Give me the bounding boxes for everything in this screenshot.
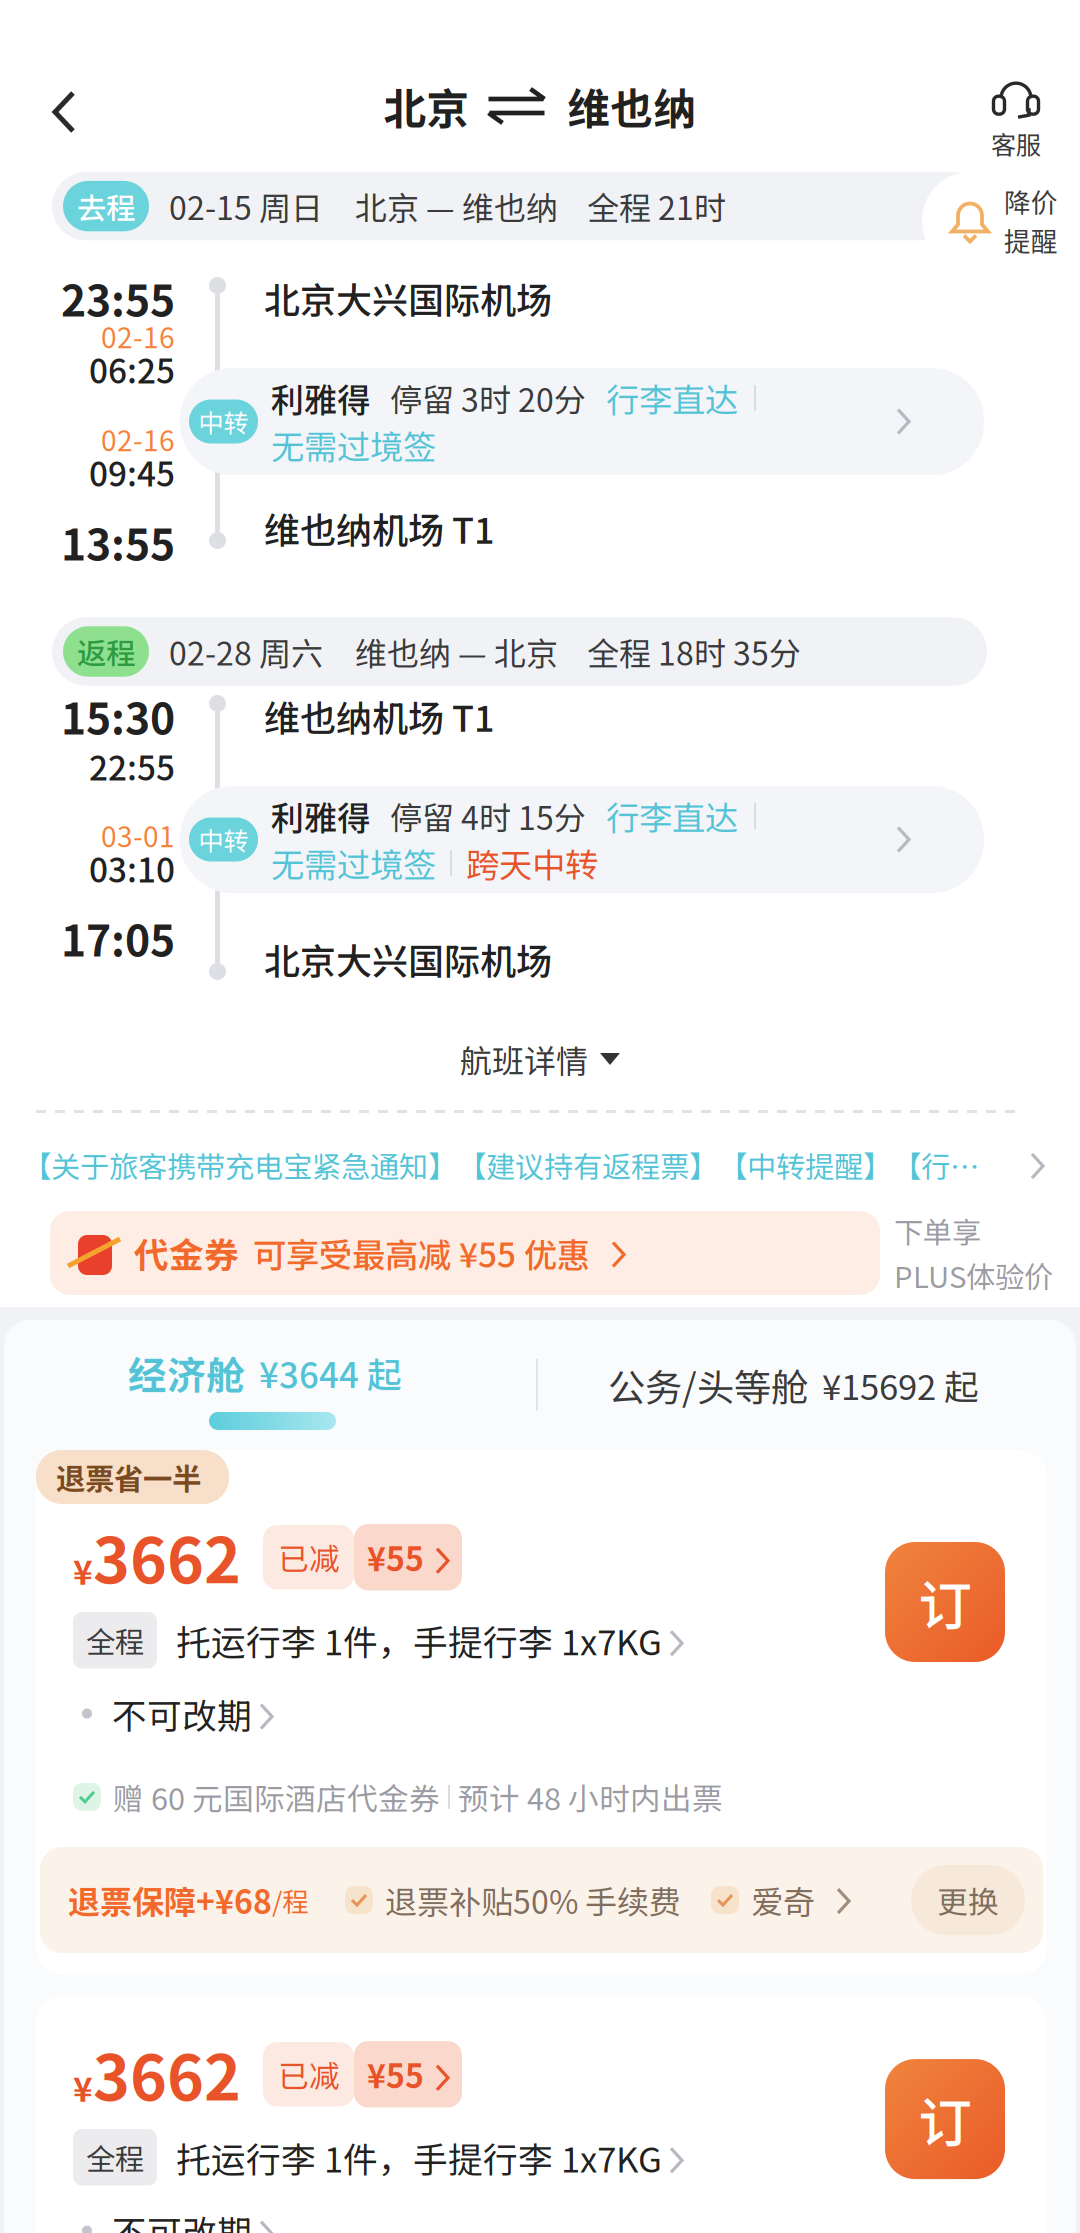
button[interactable]: 订 xyxy=(885,1542,1005,1662)
staticText: 跨天中转 xyxy=(466,839,598,887)
staticText: ¥55 xyxy=(367,1534,424,1580)
staticText: /程 xyxy=(272,1881,309,1919)
staticText: 订 xyxy=(918,1563,971,1641)
staticText: 托运行李 1件，手提行李 1x7KG xyxy=(176,2132,662,2182)
button[interactable]: 不可改期 xyxy=(73,2206,885,2233)
staticText: 停留 3时 20分 xyxy=(390,375,586,421)
staticText: 赠 60 元国际酒店代金券 xyxy=(113,1775,440,1819)
button[interactable]: 降价 xyxy=(922,172,1080,269)
staticText: 航班详情 xyxy=(460,1036,588,1082)
button[interactable]: 更换 xyxy=(911,1865,1025,1935)
staticText: 13:55 xyxy=(61,511,175,573)
button[interactable]: 代金券 xyxy=(50,1211,880,1295)
staticText: 降价 xyxy=(1004,182,1058,220)
staticText: 02-16 xyxy=(101,419,175,459)
button[interactable]: 全程 xyxy=(73,1612,885,1668)
button[interactable]: 客服 xyxy=(958,51,1074,175)
staticText: 更换 xyxy=(937,1878,999,1922)
staticText: 02-28 周六 xyxy=(169,628,323,675)
staticText: ¥55 xyxy=(367,2051,424,2097)
staticText: 【关于旅客携带充电宝紧急通知】【建议持有返程票】【中转提醒】【行… xyxy=(22,1144,979,1186)
staticText: 全程 xyxy=(86,2136,144,2179)
staticText: 已减 xyxy=(278,2052,340,2096)
staticText: ¥15692 起 xyxy=(822,1360,979,1410)
staticText: 03-01 xyxy=(101,815,175,855)
staticText: 不可改期 xyxy=(112,2206,252,2233)
staticText: 03:10 xyxy=(89,844,175,892)
staticText: 维也纳 xyxy=(567,75,696,137)
staticText: 利雅得 xyxy=(271,374,370,422)
staticText: 3662 xyxy=(93,2028,241,2118)
staticText: 09:45 xyxy=(89,448,175,496)
staticText: 订 xyxy=(918,2080,971,2158)
button[interactable]: 不可改期 xyxy=(73,1688,885,1739)
staticText: 全程 xyxy=(86,1619,144,1661)
staticText: 北京 xyxy=(383,75,469,137)
button[interactable]: 【关于旅客携带充电宝紧急通知】【建议持有返程票】【中转提醒】【行… xyxy=(0,1125,1080,1205)
staticText: 已减 xyxy=(278,1535,340,1579)
staticText: 维也纳 — 北京 xyxy=(355,628,558,675)
staticText: 维也纳机场 T1 xyxy=(264,502,495,554)
staticText: 行李直达 xyxy=(606,374,738,422)
staticText: 02-15 周日 xyxy=(169,183,323,229)
staticText: ¥ xyxy=(73,1546,93,1594)
staticText: 23:55 xyxy=(61,267,175,329)
staticText: 行李直达 xyxy=(606,792,738,840)
button[interactable]: 中转 xyxy=(180,786,984,893)
staticText: 爱奇 xyxy=(751,1877,815,1923)
staticText: 22:55 xyxy=(89,742,175,790)
staticText: 3662 xyxy=(93,1511,241,1601)
button[interactable]: 已减 xyxy=(263,1524,462,1590)
button[interactable]: 航班详情 xyxy=(0,1026,1080,1092)
staticText: 去程 xyxy=(77,185,135,227)
button[interactable]: 经济舱 xyxy=(4,1320,528,1450)
button[interactable]: 返回 xyxy=(0,48,130,178)
staticText: 利雅得 xyxy=(271,792,370,840)
staticText: 退票补贴50% 手续费 xyxy=(385,1877,681,1923)
staticText: 无需过境签 xyxy=(271,839,436,887)
staticText: 17:05 xyxy=(61,907,175,969)
staticText: 代金券 xyxy=(134,1228,239,1278)
button[interactable]: 已减 xyxy=(263,2041,462,2107)
staticText: 预计 48 小时内出票 xyxy=(458,1775,723,1819)
staticText: ¥3644 起 xyxy=(259,1348,402,1398)
staticText: 15:30 xyxy=(61,685,175,747)
staticText: 停留 4时 15分 xyxy=(390,793,586,839)
staticText: 退票省一半 xyxy=(56,1456,201,1498)
button[interactable]: 公务/头等舱 xyxy=(608,1320,979,1450)
staticText: 退票保障 xyxy=(68,1877,196,1923)
staticText: 经济舱 xyxy=(128,1345,245,1401)
staticText: 不可改期 xyxy=(112,1688,252,1739)
staticText: 全程 21时 xyxy=(587,183,726,229)
staticText: 提醒 xyxy=(1004,220,1058,259)
staticText: 公务/头等舱 xyxy=(608,1358,808,1412)
staticText: 中转 xyxy=(198,821,248,858)
button[interactable]: 订 xyxy=(885,2059,1005,2179)
staticText: 托运行李 1件，手提行李 1x7KG xyxy=(176,1615,662,1665)
button[interactable]: 全程 xyxy=(73,2129,885,2186)
staticText: 全程 18时 35分 xyxy=(587,628,801,675)
staticText: 可享受最高减 ¥55 优惠 xyxy=(253,1229,590,1277)
staticText: 下单享 xyxy=(894,1209,981,1252)
staticText: 客服 xyxy=(991,125,1041,162)
staticText: +¥68 xyxy=(196,1877,272,1923)
staticText: 北京大兴国际机场 xyxy=(264,933,552,985)
staticText: 北京 — 维也纳 xyxy=(355,183,558,229)
staticText: 06:25 xyxy=(89,345,175,393)
staticText: 北京大兴国际机场 xyxy=(264,272,552,324)
staticText: 无需过境签 xyxy=(271,421,436,469)
staticText: 中转 xyxy=(198,403,248,440)
button[interactable]: 中转 xyxy=(180,368,984,475)
staticText: 维也纳机场 T1 xyxy=(264,690,495,742)
staticText: 02-16 xyxy=(101,316,175,356)
staticText: ¥ xyxy=(73,2063,93,2111)
staticText: PLUS体验价 xyxy=(894,1254,1053,1296)
staticText: 返程 xyxy=(77,630,135,673)
